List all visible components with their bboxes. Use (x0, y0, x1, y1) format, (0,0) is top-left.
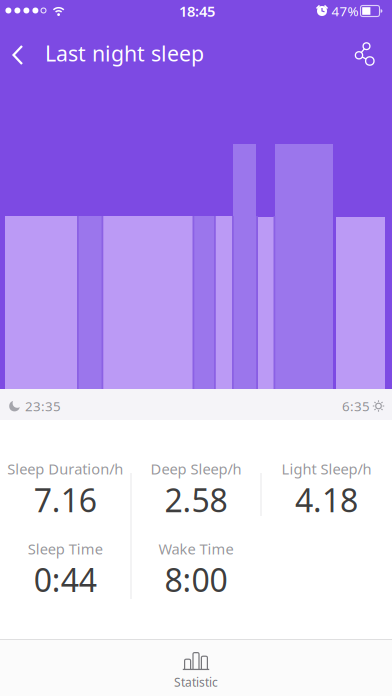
staticText: Sleep Time (28, 539, 103, 558)
staticText: Deep Sleep/h (150, 459, 241, 478)
staticText: 8:00 (164, 558, 227, 601)
button[interactable]: Statistic (0, 646, 392, 696)
button[interactable] (0, 24, 38, 78)
button[interactable] (343, 24, 387, 78)
staticText: 6:35 (342, 397, 370, 415)
staticText: 23:35 (25, 397, 61, 415)
staticText: 0:44 (34, 558, 97, 601)
staticText: 47% (331, 2, 358, 20)
staticText: Wake Time (158, 539, 233, 558)
staticText: 18:45 (179, 1, 215, 21)
staticText: Light Sleep/h (281, 459, 371, 478)
staticText: 4.18 (295, 478, 358, 521)
staticText: 7.16 (34, 478, 97, 521)
staticText: Statistic (174, 674, 218, 690)
staticText: 2.58 (164, 478, 227, 521)
staticText: Sleep Duration/h (7, 459, 123, 478)
staticText: Last night sleep (45, 39, 204, 67)
